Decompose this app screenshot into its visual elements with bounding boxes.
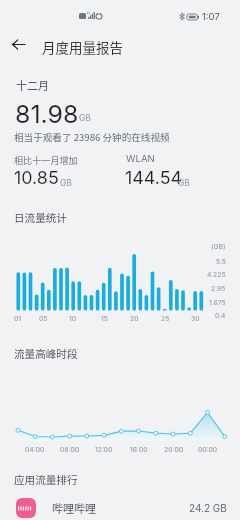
staticText: GB bbox=[60, 178, 72, 188]
staticText: 10 bbox=[69, 314, 77, 322]
staticText: 05 bbox=[39, 314, 48, 322]
staticText: 1:07 bbox=[202, 11, 220, 22]
staticText: WLAN bbox=[126, 153, 155, 165]
staticText: 十二月 bbox=[16, 77, 49, 93]
staticText: 12:00 bbox=[95, 445, 113, 453]
staticText: 4.225 bbox=[207, 270, 226, 278]
staticText: 25 bbox=[161, 314, 170, 322]
staticText: 5.5 bbox=[216, 257, 226, 265]
staticText: 0.4 bbox=[215, 311, 226, 319]
staticText: 24.2 GB bbox=[189, 502, 227, 514]
staticText: 08:00 bbox=[60, 445, 80, 453]
staticText: 30 bbox=[191, 314, 200, 322]
staticText: 日流量统计 bbox=[14, 210, 67, 225]
staticText: 相比十一月增加 bbox=[14, 153, 78, 166]
staticText: 81.98 bbox=[15, 99, 79, 129]
staticText: 2.95 bbox=[211, 284, 226, 292]
staticText: (GB) bbox=[211, 242, 226, 250]
staticText: 00:00 bbox=[198, 445, 218, 453]
staticText: 16:00 bbox=[130, 445, 148, 453]
button[interactable]: Back bbox=[5, 31, 32, 58]
staticText: 15 bbox=[101, 314, 108, 322]
staticText: 20:00 bbox=[164, 445, 183, 453]
staticText: 相当于观看了 23986 分钟的在线视频 bbox=[14, 130, 170, 144]
staticText: 01 bbox=[14, 314, 22, 322]
staticText: 1.675 bbox=[209, 298, 226, 306]
button[interactable]: 哔哩哔哩 bbox=[0, 496, 240, 520]
staticText: 流量高峰时段 bbox=[14, 346, 78, 361]
staticText: 10.85 bbox=[14, 167, 59, 189]
staticText: 144.54 bbox=[125, 167, 183, 189]
staticText: 04:00 bbox=[25, 445, 45, 453]
staticText: 应用流量排行 bbox=[14, 472, 78, 487]
staticText: 哔哩哔哩 bbox=[52, 500, 96, 516]
staticText: 20 bbox=[130, 314, 139, 322]
staticText: GB bbox=[79, 113, 91, 123]
staticText: GB bbox=[178, 178, 190, 188]
staticText: 月度用量报告 bbox=[42, 37, 123, 57]
